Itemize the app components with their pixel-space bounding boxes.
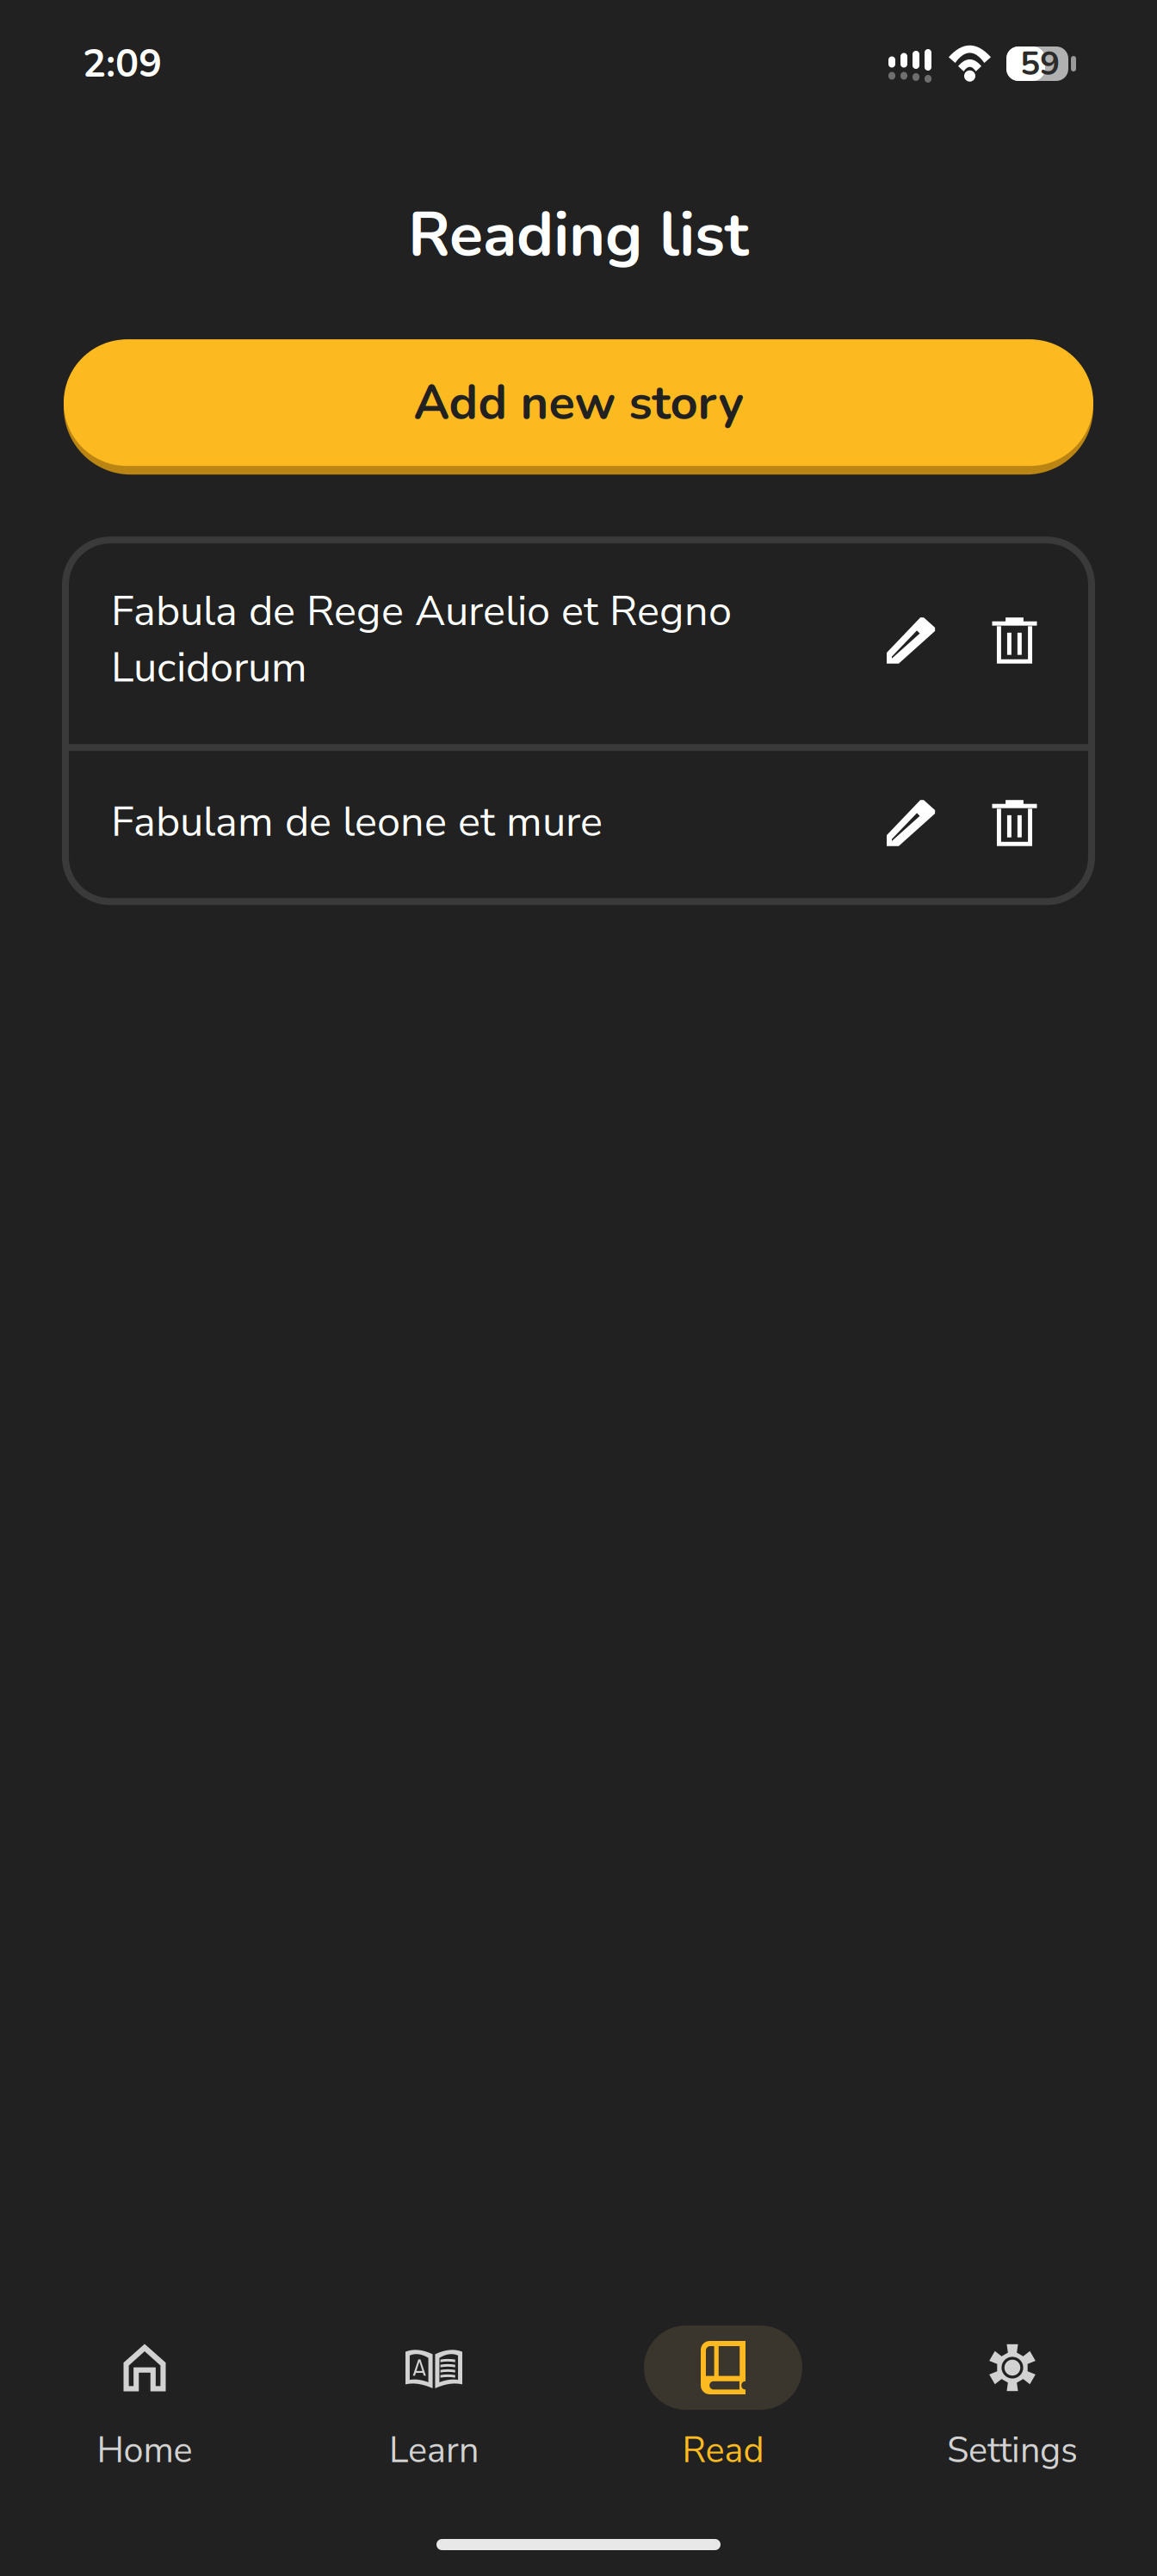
button[interactable]: Delete <box>964 798 1065 846</box>
staticText: Add new story <box>414 370 743 436</box>
button[interactable]: Delete <box>964 615 1065 664</box>
staticText: Read <box>682 2426 764 2475</box>
button[interactable]: Read <box>578 2325 868 2485</box>
staticText: Fabulam de leone et mure <box>111 793 603 851</box>
button[interactable]: Edit <box>858 798 964 846</box>
button[interactable]: Settings <box>868 2325 1157 2485</box>
button[interactable]: Edit <box>858 615 964 664</box>
staticText: 59 <box>1020 41 1060 86</box>
staticText: Learn <box>389 2426 479 2475</box>
staticText: Reading list <box>408 193 749 277</box>
staticText: Fabula de Rege Aurelio et Regno <box>111 583 732 640</box>
staticText: Settings <box>947 2426 1078 2475</box>
staticText: Lucidorum <box>111 639 307 696</box>
button[interactable]: Learn <box>289 2325 578 2485</box>
staticText: 2:09 <box>83 37 162 90</box>
staticText: Home <box>97 2426 192 2475</box>
button[interactable]: Home <box>0 2325 289 2485</box>
button[interactable]: Add new story <box>64 339 1093 475</box>
